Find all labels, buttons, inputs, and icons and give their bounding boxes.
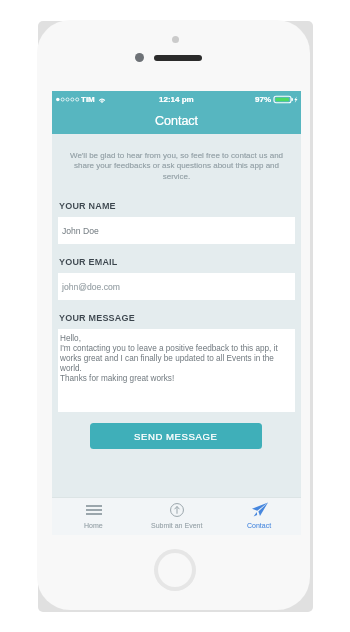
staticText: YOUR NAME xyxy=(59,201,116,211)
staticText: Contact xyxy=(247,522,272,530)
staticText: John Doe xyxy=(62,226,99,236)
staticText: 97% xyxy=(255,95,272,104)
button[interactable]: Contact xyxy=(218,497,301,535)
button[interactable]: Hello, I'm contacting you to leave a pos… xyxy=(58,329,295,412)
staticText: Home xyxy=(84,522,103,530)
button[interactable]: Submit an Event xyxy=(135,497,218,535)
staticText: YOUR MESSAGE xyxy=(59,313,135,323)
staticText: john@doe.com xyxy=(62,282,120,292)
staticText: Submit an Event xyxy=(151,522,203,530)
button[interactable]: SEND MESSAGE xyxy=(90,423,262,449)
staticText: Contact xyxy=(155,114,199,128)
button[interactable]: Home xyxy=(52,497,135,535)
staticText: YOUR EMAIL xyxy=(59,257,118,267)
staticText: SEND MESSAGE xyxy=(134,431,218,442)
staticText: 12:14 pm xyxy=(159,95,194,104)
staticText: Hello, I'm contacting you to leave a pos… xyxy=(60,334,286,383)
button[interactable]: John Doe xyxy=(58,217,295,244)
button[interactable]: Home button xyxy=(154,549,196,591)
staticText: TIM xyxy=(81,95,95,104)
button[interactable]: john@doe.com xyxy=(58,273,295,300)
staticText: We'll be glad to hear from you, so feel … xyxy=(63,151,290,181)
